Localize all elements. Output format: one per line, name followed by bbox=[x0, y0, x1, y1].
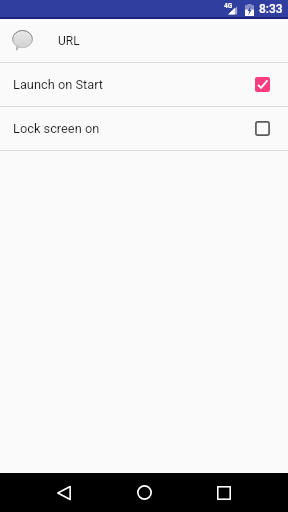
staticText: URL bbox=[58, 34, 80, 48]
button[interactable]: Recents bbox=[204, 473, 244, 512]
staticText: Lock screen on bbox=[13, 121, 100, 136]
staticText: 4G bbox=[224, 2, 233, 10]
button[interactable]: URL bbox=[0, 19, 288, 62]
button[interactable]: Home bbox=[124, 473, 164, 512]
button[interactable]: Launch on Start bbox=[0, 63, 288, 106]
button[interactable]: Back bbox=[44, 473, 84, 512]
button[interactable]: Lock screen on bbox=[0, 107, 288, 150]
staticText: Launch on Start bbox=[13, 77, 104, 92]
staticText: 8:33 bbox=[259, 2, 283, 16]
